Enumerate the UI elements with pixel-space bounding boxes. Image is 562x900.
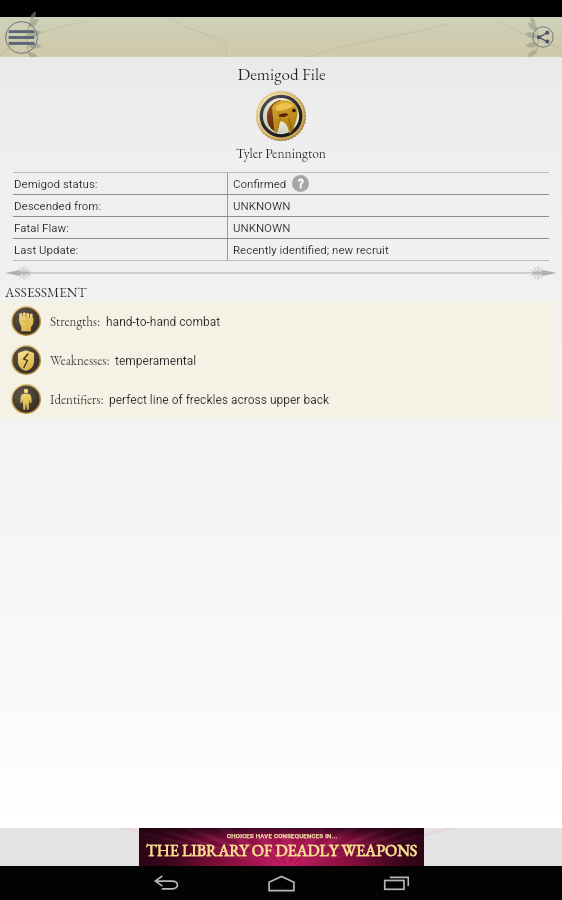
staticText: Weaknesses:	[50, 352, 110, 369]
button[interactable]: Identifiers:	[0, 384, 555, 414]
button[interactable]: Demigod status:	[13, 173, 549, 194]
button[interactable]: Home	[257, 866, 305, 900]
staticText: hand-to-hand combat	[106, 315, 221, 329]
staticText: Fatal Flaw:	[14, 221, 69, 234]
button[interactable]: Strengths:	[0, 306, 555, 336]
button[interactable]: CHOICES HAVE CONSEQUENCES IN...	[139, 828, 424, 866]
staticText: CHOICES HAVE CONSEQUENCES IN...	[227, 832, 338, 839]
staticText: temperamental	[115, 354, 197, 368]
button[interactable]: Share	[530, 24, 556, 50]
staticText: Tyler Pennington	[236, 144, 326, 162]
staticText: UNKNOWN	[233, 199, 291, 212]
staticText: Recently identified; new recruit	[233, 243, 389, 256]
staticText: THE LIBRARY OF DEADLY WEAPONS	[146, 840, 418, 861]
staticText: ASSESSMENT	[5, 283, 87, 301]
staticText: Confirmed	[233, 177, 287, 190]
button[interactable]: Fatal Flaw:	[13, 217, 549, 238]
button[interactable]: Weaknesses:	[0, 345, 555, 375]
staticText: Identifiers:	[50, 391, 104, 408]
staticText: Strengths:	[50, 313, 101, 330]
button[interactable]: Menu	[4, 20, 38, 54]
staticText: perfect line of freckles across upper ba…	[109, 393, 330, 407]
button[interactable]: Descended from:	[13, 195, 549, 216]
staticText: Descended from:	[14, 199, 102, 212]
button[interactable]: Recent apps	[372, 866, 420, 900]
staticText: Demigod File	[237, 63, 326, 85]
staticText: Demigod status:	[14, 177, 98, 190]
button[interactable]: Back	[143, 866, 191, 900]
staticText: Last Update:	[14, 243, 79, 256]
button[interactable]: Help	[292, 175, 309, 192]
staticText: UNKNOWN	[233, 221, 291, 234]
button[interactable]: Last Update:	[13, 239, 549, 260]
staticText: ?	[298, 177, 304, 191]
